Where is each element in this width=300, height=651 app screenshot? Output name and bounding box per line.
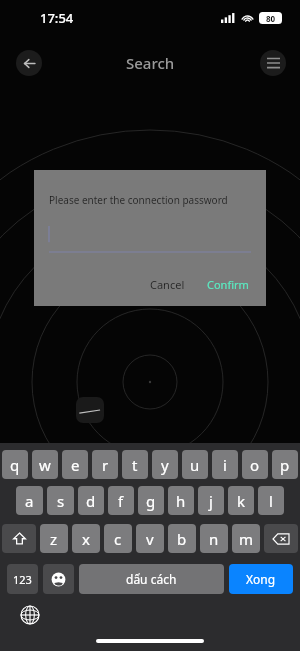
staticText: c: [114, 529, 122, 549]
button[interactable]: Xong: [229, 564, 293, 594]
staticText: Xong: [246, 571, 276, 587]
button[interactable]: j: [198, 486, 224, 515]
staticText: t: [132, 455, 138, 475]
staticText: w: [39, 455, 51, 475]
staticText: 123: [13, 572, 32, 587]
button[interactable]: e: [62, 450, 88, 479]
staticText: b: [177, 529, 187, 549]
staticText: g: [146, 491, 156, 511]
staticText: m: [239, 529, 254, 549]
staticText: o: [250, 455, 260, 475]
staticText: y: [161, 455, 169, 475]
staticText: 17:54: [40, 9, 74, 27]
staticText: s: [57, 491, 65, 511]
button[interactable]: Confirm: [199, 273, 257, 296]
button[interactable]: Device: [76, 397, 104, 423]
staticText: z: [50, 529, 58, 549]
staticText: dấu cách: [126, 571, 177, 587]
staticText: p: [280, 455, 290, 475]
staticText: h: [176, 491, 186, 511]
staticText: u: [190, 455, 200, 475]
button[interactable]: s: [47, 486, 74, 515]
button[interactable]: x: [72, 524, 100, 553]
button[interactable]: t: [122, 450, 148, 479]
button[interactable]: v: [136, 524, 164, 553]
staticText: x: [82, 529, 90, 549]
staticText: q: [10, 455, 20, 475]
button[interactable]: r: [92, 450, 118, 479]
button[interactable]: Change language: [20, 605, 40, 625]
staticText: Search: [126, 53, 175, 73]
button[interactable]: a: [16, 486, 43, 515]
button[interactable]: o: [242, 450, 268, 479]
button[interactable]: Backspace: [264, 524, 298, 553]
button[interactable]: h: [168, 486, 194, 515]
button[interactable]: Cancel: [142, 273, 193, 296]
staticText: n: [209, 529, 219, 549]
button[interactable]: z: [40, 524, 68, 553]
button[interactable]: 123: [7, 564, 38, 594]
button[interactable]: g: [138, 486, 164, 515]
button[interactable]: b: [168, 524, 196, 553]
staticText: Confirm: [207, 277, 249, 292]
button[interactable]: m: [232, 524, 260, 553]
staticText: d: [86, 491, 96, 511]
button[interactable]: Back: [16, 50, 42, 76]
button[interactable]: Shift: [2, 524, 36, 553]
button[interactable]: w: [32, 450, 58, 479]
button[interactable]: y: [152, 450, 178, 479]
button[interactable]: c: [104, 524, 132, 553]
button[interactable]: dấu cách: [79, 564, 224, 594]
staticText: l: [269, 491, 273, 511]
staticText: a: [25, 491, 34, 511]
button[interactable]: q: [2, 450, 28, 479]
staticText: e: [71, 455, 80, 475]
button[interactable]: p: [272, 450, 298, 479]
staticText: Cancel: [150, 277, 185, 292]
button[interactable]: l: [258, 486, 284, 515]
button[interactable]: n: [200, 524, 228, 553]
staticText: j: [209, 491, 213, 511]
button[interactable]: d: [78, 486, 104, 515]
staticText: Please enter the connection password: [49, 193, 228, 207]
button[interactable]: k: [228, 486, 254, 515]
button[interactable]: u: [182, 450, 208, 479]
button[interactable]: Menu: [260, 50, 286, 76]
button[interactable]: Emoji: [43, 564, 74, 594]
staticText: r: [102, 455, 109, 475]
staticText: k: [237, 491, 246, 511]
staticText: i: [223, 455, 227, 475]
button[interactable]: i: [212, 450, 238, 479]
staticText: f: [118, 491, 124, 511]
button[interactable]: f: [108, 486, 134, 515]
staticText: v: [146, 529, 154, 549]
button[interactable]: [49, 225, 251, 253]
staticText: 80: [266, 13, 276, 24]
